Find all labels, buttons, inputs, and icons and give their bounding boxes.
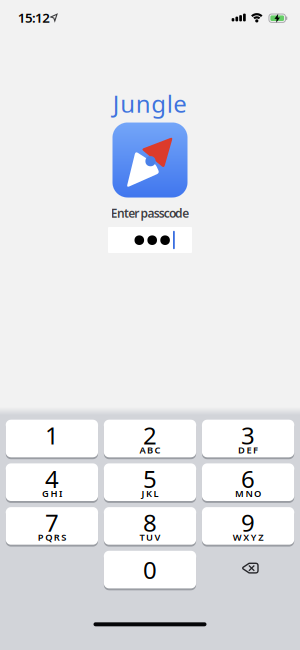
staticText: GHI: [42, 487, 62, 500]
staticText: 8: [143, 507, 157, 538]
button[interactable]: 8: [104, 507, 196, 545]
staticText: JKL: [141, 487, 158, 500]
button[interactable]: 9: [202, 507, 294, 545]
staticText: 9: [241, 507, 255, 538]
staticText: 5: [143, 463, 157, 495]
staticText: 6: [241, 463, 255, 495]
button[interactable]: 4: [6, 463, 98, 501]
button[interactable]: 6: [202, 463, 294, 501]
button[interactable]: 5: [104, 463, 196, 501]
button[interactable]: 0: [104, 551, 196, 588]
staticText: 15:12: [18, 9, 50, 26]
staticText: 7: [45, 507, 59, 538]
staticText: 4: [45, 463, 59, 495]
staticText: WXYZ: [233, 531, 263, 543]
staticText: 3: [241, 419, 255, 451]
staticText: PQRS: [38, 531, 66, 543]
button[interactable]: 3: [202, 420, 294, 457]
staticText: 0: [143, 554, 157, 586]
button[interactable]: Delete: [239, 560, 261, 576]
staticText: DEF: [238, 444, 258, 456]
staticText: Enter passcode: [111, 205, 189, 221]
staticText: Jungle: [113, 88, 187, 119]
staticText: 1: [45, 419, 59, 451]
button[interactable]: 2: [104, 420, 196, 457]
button[interactable]: 7: [6, 507, 98, 545]
staticText: MNO: [235, 487, 261, 500]
button[interactable]: 1: [6, 420, 98, 457]
staticText: 2: [143, 419, 157, 451]
staticText: TUV: [139, 531, 160, 543]
staticText: ABC: [139, 444, 160, 456]
